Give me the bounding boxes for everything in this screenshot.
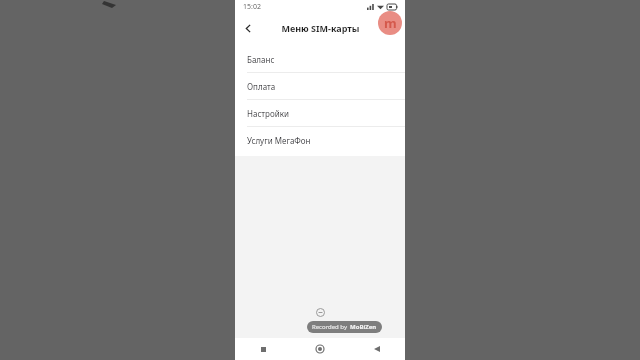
button[interactable]: Back bbox=[348, 338, 405, 360]
staticText: Баланс bbox=[247, 54, 275, 65]
button[interactable]: Баланс bbox=[235, 46, 405, 72]
button[interactable]: Back bbox=[235, 15, 261, 41]
button[interactable]: Recents bbox=[235, 338, 291, 360]
staticText: m bbox=[384, 14, 397, 32]
button[interactable]: Оплата bbox=[235, 73, 405, 99]
staticText: Recorded by bbox=[312, 323, 347, 331]
button[interactable]: Home bbox=[291, 338, 348, 360]
staticText: Оплата bbox=[247, 81, 276, 92]
button[interactable]: MegaFon account bbox=[378, 11, 402, 35]
staticText: Настройки bbox=[247, 108, 289, 119]
staticText: Услуги МегаФон bbox=[247, 135, 311, 146]
staticText: 15:02 bbox=[243, 2, 261, 12]
button[interactable]: Настройки bbox=[235, 100, 405, 126]
button[interactable]: Услуги МегаФон bbox=[235, 127, 405, 153]
staticText: Меню SIM-карты bbox=[281, 22, 360, 34]
staticText: MoBiZen bbox=[350, 323, 377, 331]
